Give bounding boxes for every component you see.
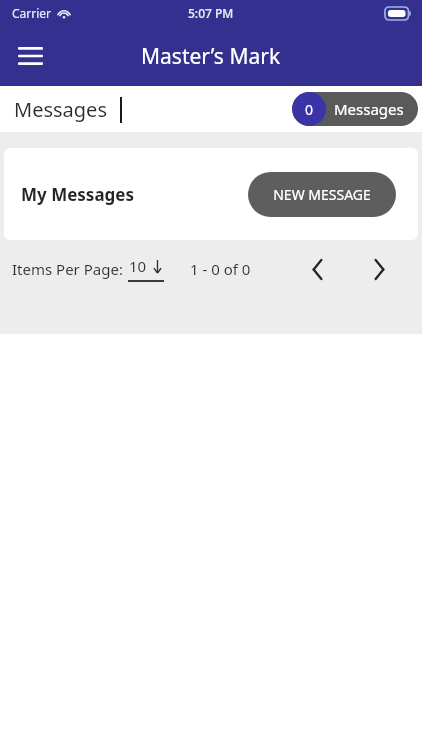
staticText: NEW MESSAGE [273,185,371,204]
staticText: 0 [305,100,314,119]
button[interactable]: Next page [362,252,396,286]
staticText: Master’s Mark [141,42,281,71]
staticText: My Messages [21,183,135,206]
button[interactable]: 0 [292,92,418,126]
button[interactable]: Previous page [300,252,334,286]
staticText: 10 [129,256,147,276]
staticText: Carrier [12,5,52,21]
staticText: 1 - 0 of 0 [190,259,251,279]
staticText: Items Per Page: [12,259,123,279]
staticText: Messages [14,96,107,123]
button[interactable]: 10 [128,256,164,282]
button[interactable]: NEW MESSAGE [248,172,396,217]
staticText: Messages [334,99,404,119]
staticText: 5:07 PM [188,5,234,21]
button[interactable]: Open navigation menu [6,32,54,80]
